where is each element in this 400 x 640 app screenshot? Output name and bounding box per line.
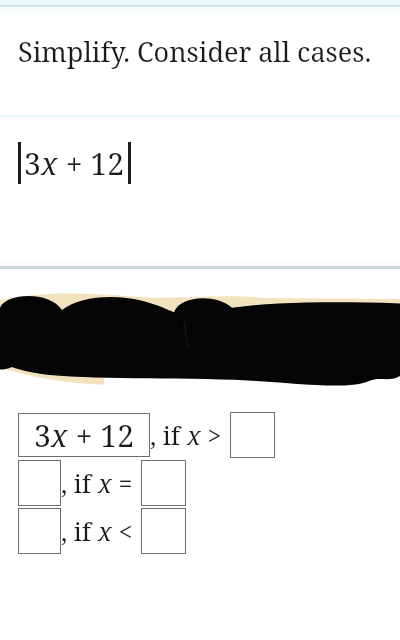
button[interactable]: Answer box, less than case value [18,508,61,554]
staticText: x [187,418,201,452]
staticText: x [98,514,112,548]
button[interactable]: Answer box, equal to bound [141,460,186,506]
button[interactable]: Answer box, greater than bound [230,412,275,458]
staticText: , if [61,466,98,500]
staticText: x [98,466,112,500]
button[interactable]: 3 [18,413,150,457]
staticText: > [201,418,228,452]
staticText: + 12 [68,415,134,456]
staticText: x [51,415,68,456]
staticText: < [112,514,139,548]
staticText: x [41,143,58,184]
staticText: = [112,466,139,500]
staticText: 3 [24,143,41,184]
staticText: , if [150,418,187,452]
button[interactable]: Answer box, less than bound [141,508,186,554]
staticText: 3 [34,415,51,456]
staticText: Simplify. Consider all cases. [18,33,372,70]
button[interactable]: Answer box, equal case value [18,460,61,506]
staticText: + 12 [58,143,124,184]
staticText: , if [61,514,98,548]
